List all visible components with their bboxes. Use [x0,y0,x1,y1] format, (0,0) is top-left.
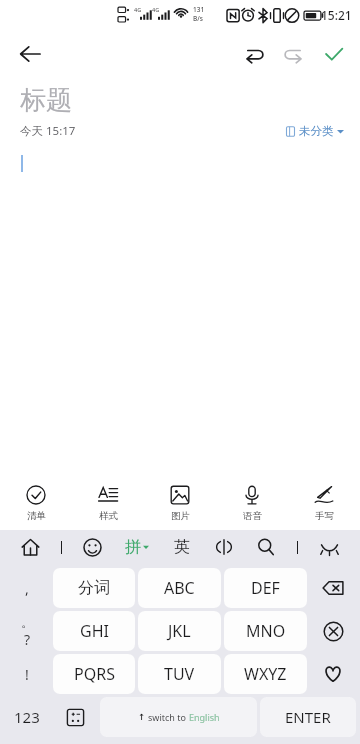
staticText: GHI [80,620,109,642]
button[interactable]: GHI [53,611,135,651]
staticText: TUV [164,663,195,685]
button[interactable]: Back [10,34,50,74]
staticText: B/s [193,14,203,23]
staticText: 4G [152,6,160,13]
button[interactable]: ! [4,654,50,694]
staticText: ! [25,665,29,684]
button[interactable]: MNO [224,611,307,651]
button[interactable]: 手写 [288,476,360,530]
button[interactable]: 123 [4,697,50,737]
button[interactable]: ENTER [260,697,356,737]
button[interactable]: PQRS [53,654,135,694]
staticText: ↑ [138,712,146,722]
button[interactable]: Done [314,34,354,74]
staticText: PQRS [74,663,115,685]
staticText: , [25,579,29,598]
button[interactable]: Search [245,530,287,564]
button[interactable]: ↑ [100,697,257,737]
button[interactable]: Keyboard home [10,530,51,564]
staticText: 分词 [78,578,110,598]
button[interactable]: 清单 [0,476,72,530]
staticText: DEF [251,577,280,599]
staticText: 图片 [171,510,190,522]
staticText: English [189,711,220,723]
button[interactable]: 拼 [113,530,161,564]
button[interactable]: Keyboard layout [203,530,245,564]
staticText: 标题 [20,84,72,117]
button[interactable]: Hide keyboard [308,530,350,564]
button[interactable]: DEF [224,568,307,608]
staticText: JKL [168,620,191,642]
staticText: MNO [246,620,286,642]
staticText: 15:21 [321,7,352,23]
button[interactable]: Backspace [310,568,356,608]
staticText: 样式 [99,510,118,522]
button[interactable]: Emoji [71,530,113,564]
button[interactable]: 。 [4,611,50,651]
staticText: 123 [14,707,40,727]
button[interactable]: WXYZ [224,654,307,694]
staticText: 语音 [243,510,262,522]
button[interactable]: 图片 [144,476,216,530]
button[interactable]: TUV [138,654,221,694]
staticText: 清单 [27,510,46,522]
button[interactable]: ABC [138,568,221,608]
button[interactable]: 英 [161,530,203,564]
staticText: switch to [148,711,189,723]
button[interactable]: , [4,568,50,608]
staticText: ABC [164,577,195,599]
button[interactable]: 未分类 [283,121,346,141]
staticText: 4G [134,6,142,13]
button[interactable]: Symbols [53,697,97,737]
button[interactable]: 分词 [53,568,135,608]
button[interactable]: Clear [310,611,356,651]
staticText: 。 [21,614,34,630]
button[interactable]: Favorites [310,654,356,694]
staticText: ENTER [285,707,331,727]
button[interactable]: 样式 [72,476,144,530]
button[interactable]: Undo [234,34,274,74]
button[interactable]: JKL [138,611,221,651]
staticText: 英 [174,537,190,557]
staticText: 131 [193,5,205,14]
staticText: 手写 [315,510,334,522]
button[interactable]: 语音 [216,476,288,530]
staticText: 今天 15:17 [20,123,76,139]
button[interactable]: Redo [274,34,314,74]
staticText: 拼 [125,537,141,557]
staticText: 未分类 [299,124,334,138]
staticText: WXYZ [244,663,287,685]
staticText: ? [24,630,31,649]
